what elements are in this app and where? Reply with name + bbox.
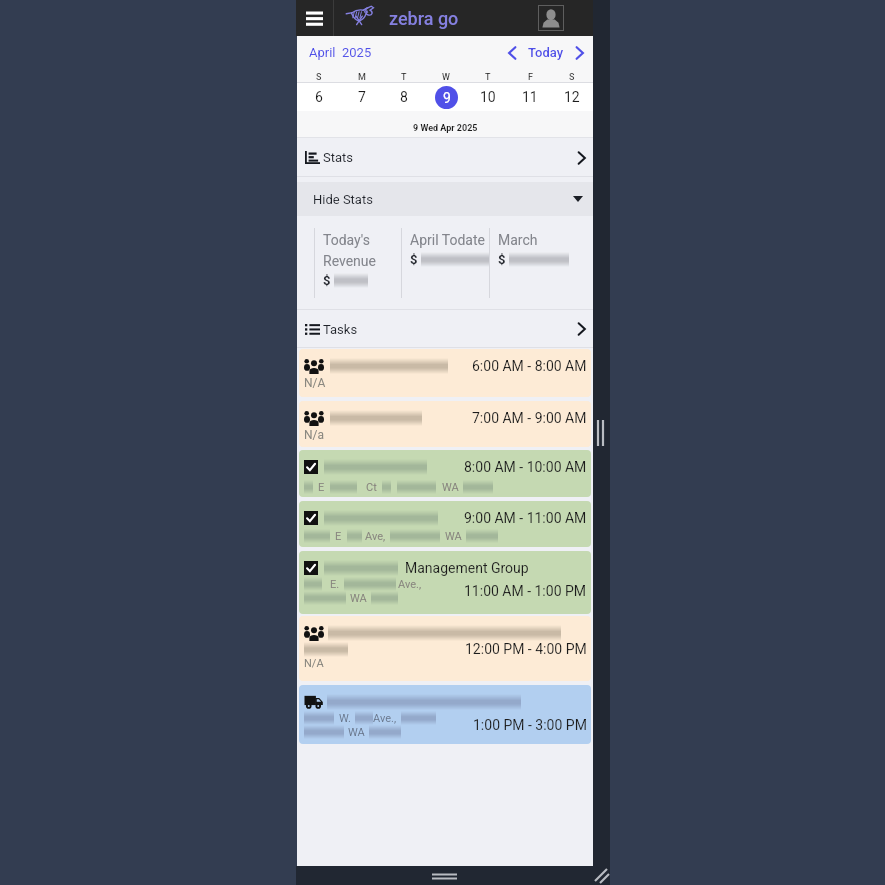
- staticText: T: [485, 72, 491, 83]
- button[interactable]: Menu: [296, 0, 333, 36]
- staticText: W: [442, 72, 450, 83]
- staticText: WA: [445, 530, 462, 543]
- button[interactable]: Resize width: [596, 420, 605, 446]
- staticText: 1:00 PM - 3:00 PM: [473, 717, 587, 733]
- button[interactable]: 12:00 PM - 4:00 PM: [299, 616, 591, 681]
- button[interactable]: W.: [299, 685, 591, 744]
- staticText: F: [528, 72, 533, 83]
- staticText: Tasks: [323, 322, 358, 337]
- staticText: Revenue: [323, 253, 376, 269]
- button[interactable]: 9: [425, 83, 467, 111]
- staticText: 11: [522, 89, 538, 105]
- staticText: Ave.,: [373, 712, 397, 725]
- staticText: 7:00 AM - 9:00 AM: [472, 410, 587, 426]
- staticText: Management Group: [405, 560, 529, 576]
- staticText: E.: [330, 578, 340, 591]
- staticText: Stats: [323, 150, 354, 165]
- staticText: 6:00 AM - 8:00 AM: [472, 358, 587, 374]
- staticText: E: [335, 530, 342, 543]
- button[interactable]: Next week: [569, 42, 591, 64]
- button[interactable]: April: [309, 45, 372, 60]
- staticText: Today: [528, 45, 564, 60]
- staticText: 8: [400, 89, 408, 105]
- staticText: 11:00 AM - 1:00 PM: [464, 583, 587, 599]
- staticText: Ct: [366, 481, 377, 494]
- staticText: M: [358, 72, 366, 83]
- staticText: $: [498, 252, 506, 267]
- button[interactable]: Today: [526, 45, 566, 60]
- staticText: 12:00 PM - 4:00 PM: [465, 641, 587, 657]
- staticText: zebra go: [389, 8, 459, 29]
- button[interactable]: 6: [297, 83, 340, 111]
- staticText: W.: [339, 712, 351, 725]
- staticText: S: [569, 72, 575, 83]
- staticText: March: [498, 232, 538, 248]
- staticText: N/A: [304, 657, 324, 670]
- staticText: 6: [315, 89, 323, 105]
- staticText: 9:00 AM - 11:00 AM: [464, 510, 587, 526]
- button[interactable]: Hide Stats: [297, 182, 593, 216]
- staticText: April Todate: [410, 232, 485, 248]
- staticText: Ave,: [365, 530, 386, 543]
- button[interactable]: Profile: [538, 5, 564, 31]
- staticText: WA: [348, 726, 365, 739]
- button[interactable]: 8: [383, 83, 425, 111]
- staticText: 10: [480, 89, 496, 105]
- staticText: 7: [358, 89, 366, 105]
- staticText: N/A: [304, 376, 326, 390]
- staticText: Ave.,: [398, 578, 422, 591]
- staticText: S: [316, 72, 322, 83]
- button[interactable]: 9:00 AM - 11:00 AM: [299, 501, 591, 547]
- button[interactable]: 10: [467, 83, 509, 111]
- staticText: 8:00 AM - 10:00 AM: [464, 459, 587, 475]
- button[interactable]: 6:00 AM - 8:00 AM: [299, 349, 591, 397]
- button[interactable]: 8:00 AM - 10:00 AM: [299, 450, 591, 497]
- staticText: $: [410, 252, 418, 267]
- button[interactable]: Tasks: [297, 310, 593, 348]
- staticText: 9 Wed Apr 2025: [413, 123, 478, 134]
- button[interactable]: 7: [340, 83, 383, 111]
- button[interactable]: Resize height: [432, 873, 457, 881]
- button[interactable]: 12: [551, 83, 593, 111]
- staticText: 12: [564, 89, 580, 105]
- button[interactable]: Previous week: [501, 42, 523, 64]
- staticText: Today's: [323, 232, 370, 248]
- staticText: WA: [442, 481, 459, 494]
- staticText: $: [323, 273, 331, 288]
- staticText: WA: [350, 592, 367, 605]
- staticText: T: [401, 72, 407, 83]
- button[interactable]: 7:00 AM - 9:00 AM: [299, 401, 591, 447]
- staticText: April: [309, 45, 336, 60]
- staticText: Hide Stats: [313, 192, 373, 207]
- staticText: 2025: [342, 45, 372, 60]
- button[interactable]: Resize window: [595, 869, 608, 882]
- button[interactable]: Stats: [297, 138, 593, 177]
- staticText: N/a: [304, 428, 325, 442]
- button[interactable]: Management Group: [299, 551, 591, 614]
- button[interactable]: 11: [509, 83, 551, 111]
- staticText: 9: [443, 90, 451, 106]
- staticText: E: [318, 481, 325, 494]
